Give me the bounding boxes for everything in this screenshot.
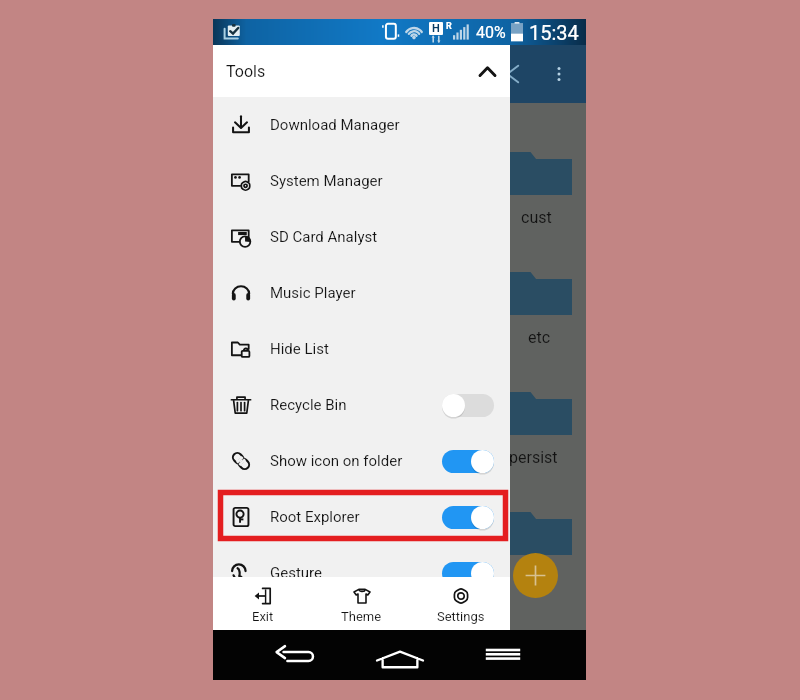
- button[interactable]: Theme: [312, 577, 411, 630]
- button[interactable]: Add: [513, 553, 558, 598]
- button[interactable]: [442, 562, 494, 585]
- staticText: 40%: [476, 23, 506, 42]
- button[interactable]: Hide List: [213, 321, 510, 377]
- button[interactable]: Show icon on folder: [213, 433, 510, 489]
- staticText: Gesture: [270, 564, 322, 582]
- button[interactable]: Tools: [213, 45, 510, 97]
- button[interactable]: [442, 394, 494, 417]
- button[interactable]: Recents: [451, 630, 554, 680]
- staticText: Exit: [252, 609, 274, 624]
- button[interactable]: Music Player: [213, 265, 510, 321]
- button[interactable]: SD Card Analyst: [213, 209, 510, 265]
- button[interactable]: Recycle Bin: [213, 377, 510, 433]
- staticText: Music Player: [270, 284, 356, 302]
- staticText: persist: [509, 448, 558, 467]
- staticText: Root Explorer: [270, 508, 360, 526]
- button[interactable]: Download Manager: [213, 97, 510, 153]
- staticText: Settings: [437, 609, 485, 624]
- button[interactable]: Settings: [411, 577, 510, 630]
- button[interactable]: [442, 506, 494, 529]
- staticText: etc: [528, 328, 551, 347]
- button[interactable]: Exit: [213, 577, 312, 630]
- staticText: Recycle Bin: [270, 396, 347, 414]
- button[interactable]: Root Explorer: [213, 489, 510, 545]
- button[interactable]: [442, 450, 494, 473]
- staticText: Tools: [226, 62, 266, 81]
- staticText: Show icon on folder: [270, 452, 403, 470]
- staticText: Hide List: [270, 340, 329, 358]
- staticText: Download Manager: [270, 116, 400, 134]
- staticText: 15:34: [529, 21, 579, 44]
- staticText: cust: [521, 208, 552, 227]
- button[interactable]: Gesture: [213, 545, 510, 601]
- button[interactable]: System Manager: [213, 153, 510, 209]
- staticText: SD Card Analyst: [270, 228, 378, 246]
- staticText: R: [446, 21, 452, 32]
- staticText: H: [432, 22, 440, 35]
- staticText: Theme: [341, 609, 382, 624]
- button[interactable]: Home: [348, 630, 451, 680]
- staticText: System Manager: [270, 172, 383, 190]
- button[interactable]: Back: [245, 630, 348, 680]
